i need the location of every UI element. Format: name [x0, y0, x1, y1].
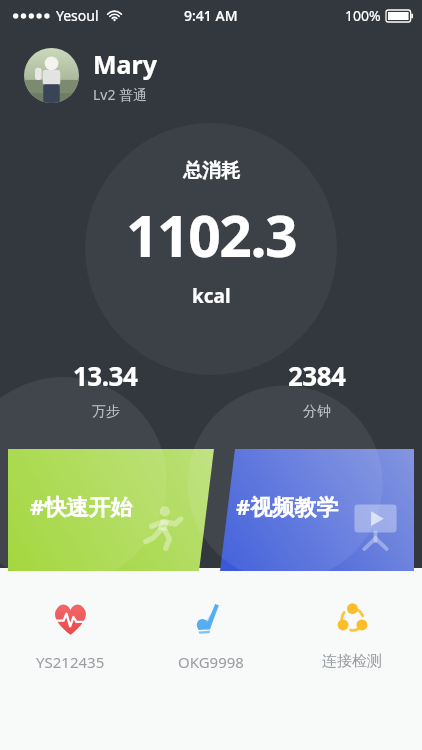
staticText: 1102.3 [126, 196, 297, 274]
staticText: 连接检测 [322, 652, 382, 671]
button[interactable]: 2384 [211, 358, 422, 421]
button[interactable]: Mary [24, 47, 158, 104]
staticText: #视频教学 [236, 491, 339, 521]
button[interactable]: Bike device OKG9998 [140, 595, 281, 672]
staticText: #快速开始 [30, 491, 133, 521]
staticText: YS212435 [36, 652, 105, 672]
staticText: Mary [93, 47, 158, 81]
button[interactable]: #视频教学 [0, 449, 422, 571]
button[interactable]: Heart rate monitor YS212435 [0, 595, 140, 672]
staticText: Yesoul [56, 6, 99, 25]
staticText: 2384 [288, 358, 346, 393]
staticText: Lv2 普通 [93, 85, 148, 104]
button[interactable]: 连接检测 [281, 595, 422, 671]
staticText: kcal [192, 283, 231, 309]
staticText: OKG9998 [178, 652, 244, 672]
staticText: 9:41 AM [184, 6, 238, 25]
staticText: 分钟 [303, 403, 331, 421]
button[interactable]: #快速开始 [0, 449, 422, 571]
staticText: 13.34 [73, 358, 138, 393]
staticText: 总消耗 [183, 159, 240, 183]
staticText: 万步 [92, 403, 120, 421]
staticText: 100% [345, 6, 381, 25]
button[interactable]: 13.34 [0, 358, 211, 421]
